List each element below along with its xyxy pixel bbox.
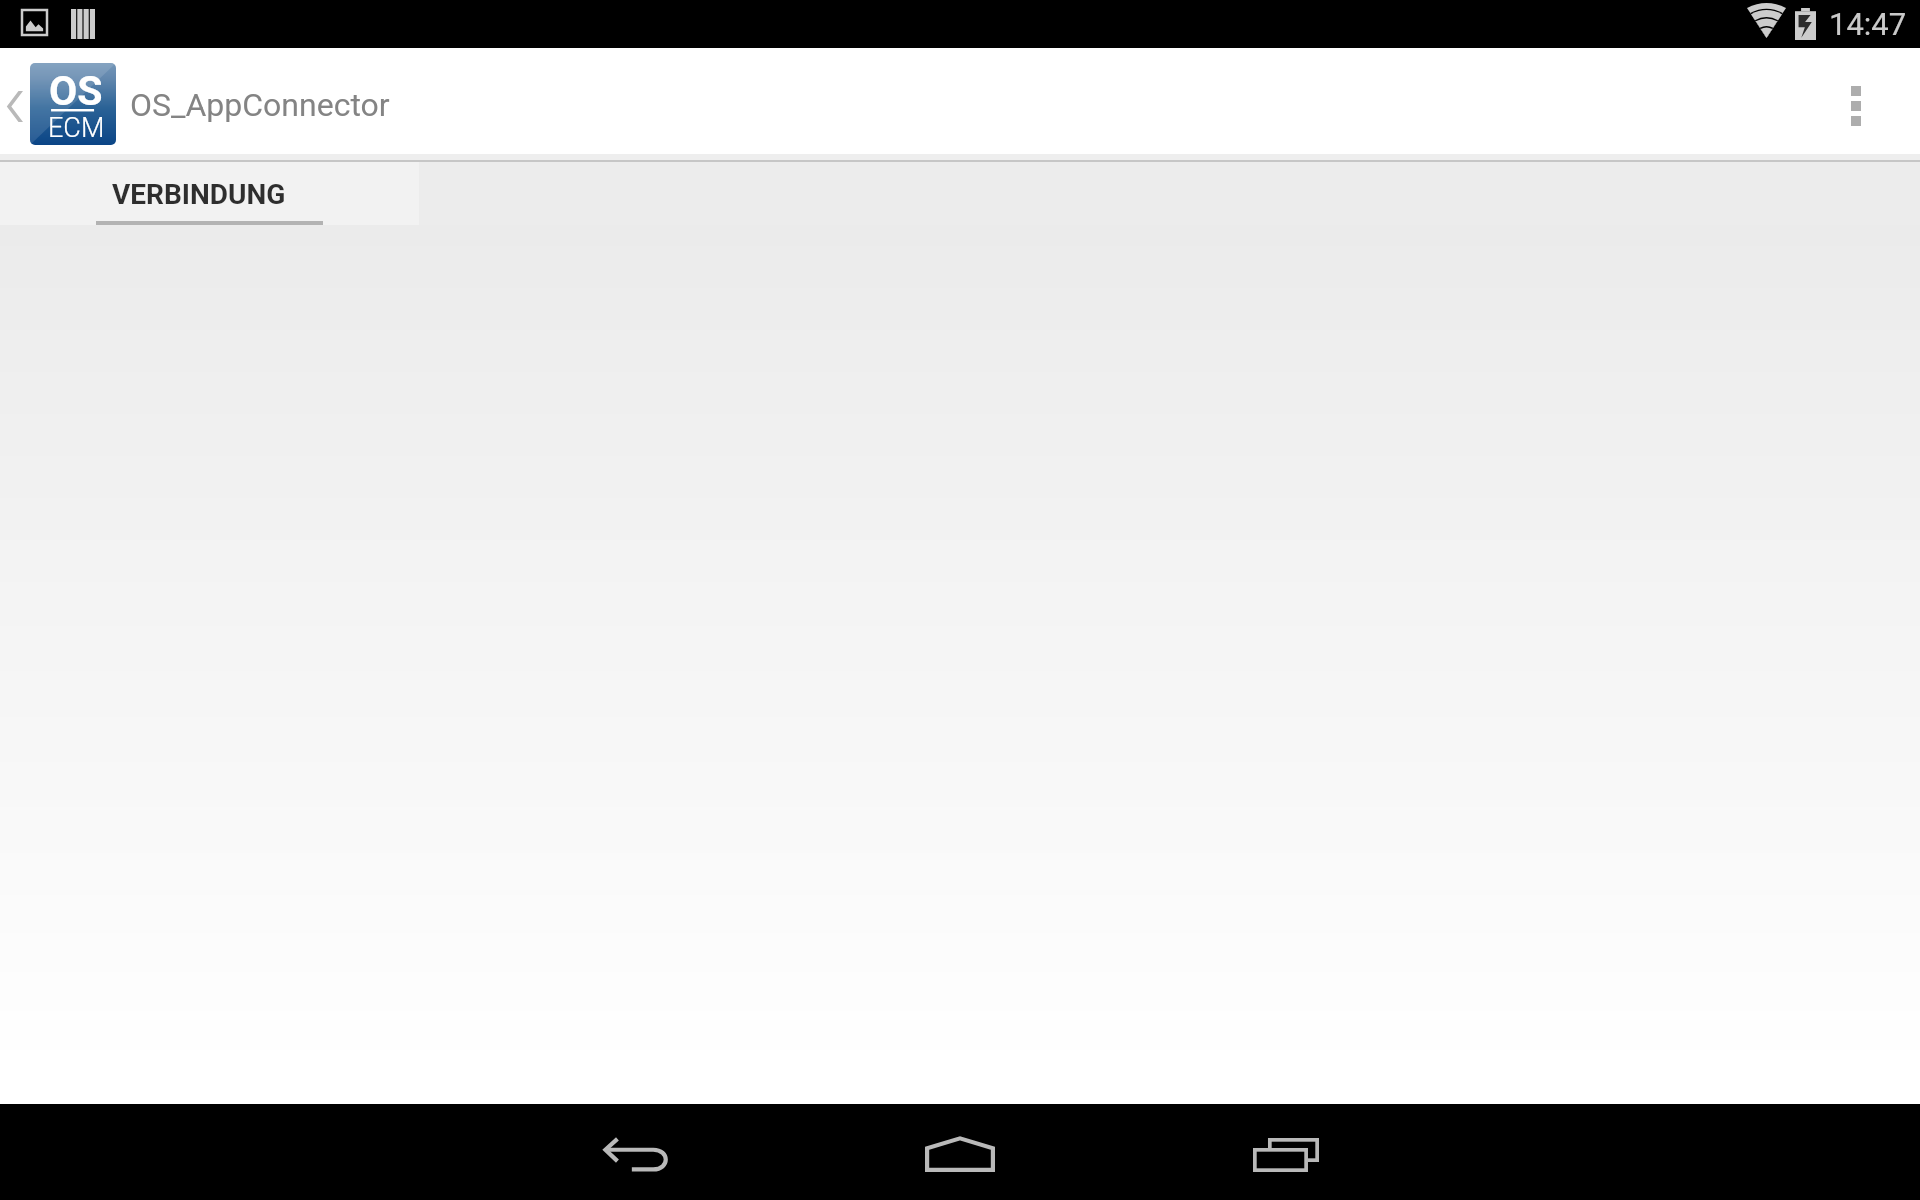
button[interactable]: Back — [556, 1107, 716, 1200]
button[interactable]: OS — [0, 48, 420, 154]
button[interactable]: More options — [1821, 68, 1891, 144]
button[interactable]: Recent apps — [1206, 1107, 1366, 1200]
staticText: VERBINDUNG — [112, 178, 286, 211]
staticText: 14:47 — [1829, 6, 1907, 42]
staticText: ECM — [48, 112, 105, 144]
button[interactable]: Home — [880, 1105, 1040, 1200]
button[interactable]: VERBINDUNG — [0, 162, 419, 225]
staticText: OS — [49, 67, 103, 115]
staticText: OS_AppConnector — [130, 86, 390, 124]
